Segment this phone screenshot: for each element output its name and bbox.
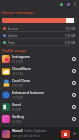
staticText: Traffic usage	[2, 48, 27, 53]
staticText: Excel	[12, 102, 21, 107]
staticText: In use	[8, 26, 18, 30]
button[interactable]: Enhanced features	[0, 89, 79, 101]
staticText: Cool Clean	[12, 78, 31, 83]
button[interactable]: Free	[0, 39, 79, 46]
button[interactable]: In use	[0, 25, 79, 32]
staticText: 124 MB	[12, 96, 23, 100]
staticText: CloudStore	[12, 66, 31, 71]
staticText: see private Archive	[12, 134, 41, 138]
staticText: 305 MB	[12, 84, 23, 88]
button[interactable]: Instagram	[0, 53, 79, 65]
button[interactable]: Excel	[0, 101, 79, 113]
staticText: Cache	[8, 33, 18, 37]
button[interactable]: Select Cool Clean	[72, 81, 76, 85]
staticText: 812 MB	[12, 60, 23, 64]
button[interactable]: Select Instagram	[72, 57, 76, 61]
staticText: 9.9 GB	[65, 40, 76, 44]
staticText: 1.8 GB	[65, 33, 76, 37]
button[interactable]: Select Gallery	[72, 117, 76, 121]
staticText: 52 GB	[66, 26, 76, 30]
staticText: Wave2	[12, 129, 23, 133]
button[interactable]: Wave2	[0, 127, 79, 140]
staticText: Device manager	[2, 10, 35, 15]
staticText: Gallery	[12, 114, 25, 119]
button[interactable]: Select Enhanced features	[72, 93, 76, 97]
staticText: 54 MB	[12, 120, 21, 124]
button[interactable]: Cache	[0, 32, 79, 39]
staticText: 410 MB	[12, 72, 23, 76]
button[interactable]: Gallery	[0, 113, 79, 125]
staticText: Enhanced features	[12, 90, 45, 95]
staticText: Free	[8, 40, 15, 44]
staticText: 96 MB	[12, 108, 21, 112]
button[interactable]: CloudStore	[0, 65, 79, 77]
button[interactable]: Select Excel	[72, 105, 76, 109]
button[interactable]: Select CloudStore	[72, 69, 76, 73]
staticText: Cache Explorer	[24, 129, 47, 133]
staticText: Instagram	[12, 54, 30, 59]
button[interactable]: Cool Clean	[0, 77, 79, 89]
button[interactable]: Install	[61, 130, 70, 138]
button[interactable]: Close ad	[73, 132, 76, 135]
